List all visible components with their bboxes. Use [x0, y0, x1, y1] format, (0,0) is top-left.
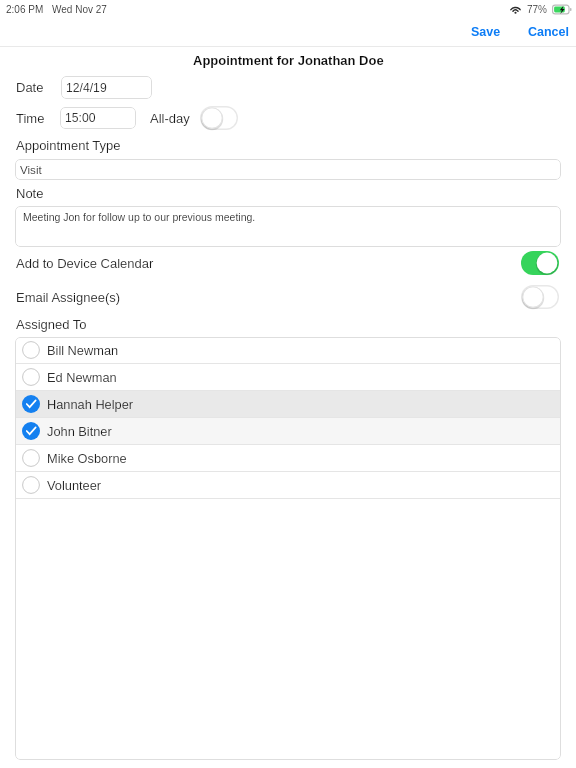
- button[interactable]: Email Assignee(s): [0, 285, 576, 309]
- button[interactable]: Add to Device Calendar: [0, 251, 576, 275]
- staticText: Appointment Type: [16, 138, 121, 153]
- button[interactable]: Volunteer: [15, 472, 561, 498]
- staticText: Save: [471, 25, 501, 39]
- button[interactable]: Switch off: [521, 285, 559, 309]
- button[interactable]: Hannah Helper: [15, 391, 561, 417]
- staticText: 2:06 PM: [6, 4, 44, 15]
- button[interactable]: Switch on: [521, 251, 559, 275]
- staticText: 77%: [527, 4, 548, 15]
- staticText: Assigned To: [16, 317, 87, 332]
- other: Battery charging: [552, 4, 572, 15]
- button[interactable]: Save: [463, 20, 509, 44]
- staticText: Cancel: [528, 25, 569, 39]
- staticText: Mike Osborne: [47, 451, 127, 465]
- staticText: Note: [16, 186, 44, 201]
- button[interactable]: John Bitner: [15, 418, 561, 444]
- staticText: 12/4/19: [66, 81, 107, 95]
- staticText: All-day: [150, 111, 190, 126]
- staticText: 15:00: [65, 111, 96, 125]
- staticText: Add to Device Calendar: [16, 256, 154, 271]
- button[interactable]: Meeting Jon for follow up to our previou…: [15, 206, 561, 247]
- staticText: Bill Newman: [47, 343, 119, 357]
- staticText: Ed Newman: [47, 370, 117, 384]
- button[interactable]: Ed Newman: [15, 364, 561, 390]
- staticText: Visit: [20, 163, 42, 176]
- button[interactable]: Mike Osborne: [15, 445, 561, 471]
- staticText: Email Assignee(s): [16, 290, 121, 305]
- button[interactable]: Bill Newman: [15, 337, 561, 363]
- other: Wi-Fi: [509, 5, 522, 14]
- button[interactable]: Switch off: [200, 106, 238, 130]
- staticText: Date: [16, 80, 44, 95]
- staticText: John Bitner: [47, 424, 112, 438]
- button[interactable]: Visit: [15, 159, 561, 180]
- staticText: Wed Nov 27: [52, 4, 107, 15]
- staticText: Appointment for Jonathan Doe: [193, 53, 384, 68]
- staticText: Meeting Jon for follow up to our previou…: [23, 211, 256, 223]
- staticText: Time: [16, 111, 45, 126]
- button[interactable]: Cancel: [520, 20, 576, 44]
- button[interactable]: 12/4/19: [61, 76, 152, 99]
- staticText: Volunteer: [47, 478, 102, 492]
- staticText: Hannah Helper: [47, 397, 134, 411]
- button[interactable]: 15:00: [60, 107, 136, 129]
